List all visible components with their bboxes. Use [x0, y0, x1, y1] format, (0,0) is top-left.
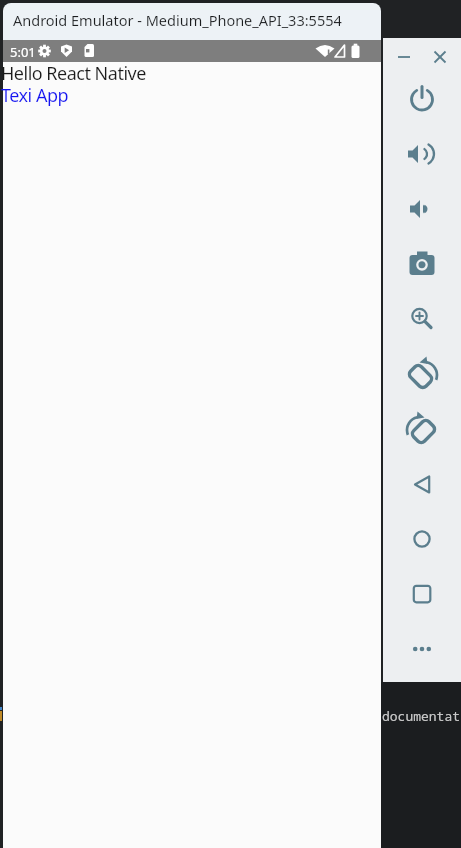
button[interactable]: [402, 574, 442, 614]
staticText: Android Emulator - Medium_Phone_API_33:5…: [13, 10, 342, 30]
staticText: documentatio: [382, 707, 461, 725]
staticText: Hello React Native: [1, 61, 146, 86]
button[interactable]: [402, 299, 442, 339]
button[interactable]: [402, 629, 442, 669]
button[interactable]: [392, 45, 416, 69]
button[interactable]: [428, 45, 452, 69]
button[interactable]: [402, 409, 442, 449]
button[interactable]: [402, 464, 442, 504]
button[interactable]: [402, 79, 442, 119]
button[interactable]: [402, 134, 442, 174]
button[interactable]: Texi App: [1, 83, 69, 108]
staticText: 5:01: [10, 43, 36, 61]
button[interactable]: [402, 244, 442, 284]
button[interactable]: [402, 354, 442, 394]
button[interactable]: [402, 519, 442, 559]
button[interactable]: [402, 189, 442, 229]
